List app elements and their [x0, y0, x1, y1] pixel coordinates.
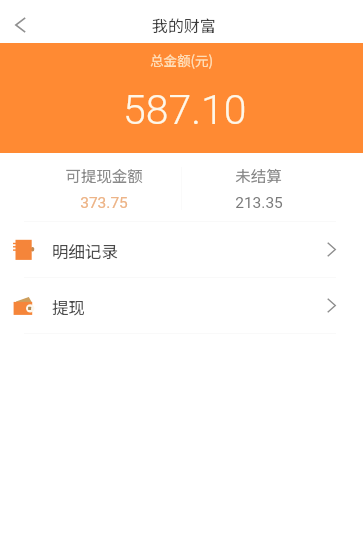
staticText: 明细记录	[52, 239, 118, 263]
staticText: 可提现金额	[65, 164, 143, 186]
staticText: 总金额(元)	[150, 50, 214, 70]
staticText: 587.10	[123, 86, 247, 134]
button[interactable]: 明细记录	[0, 222, 363, 277]
staticText: 未结算	[235, 164, 282, 186]
staticText: 373.75	[80, 194, 128, 212]
button[interactable]: 提现	[0, 278, 363, 333]
staticText: 提现	[52, 295, 85, 319]
staticText: 213.35	[235, 194, 283, 212]
button[interactable]: Back	[2, 7, 38, 43]
staticText: 我的财富	[152, 13, 217, 36]
